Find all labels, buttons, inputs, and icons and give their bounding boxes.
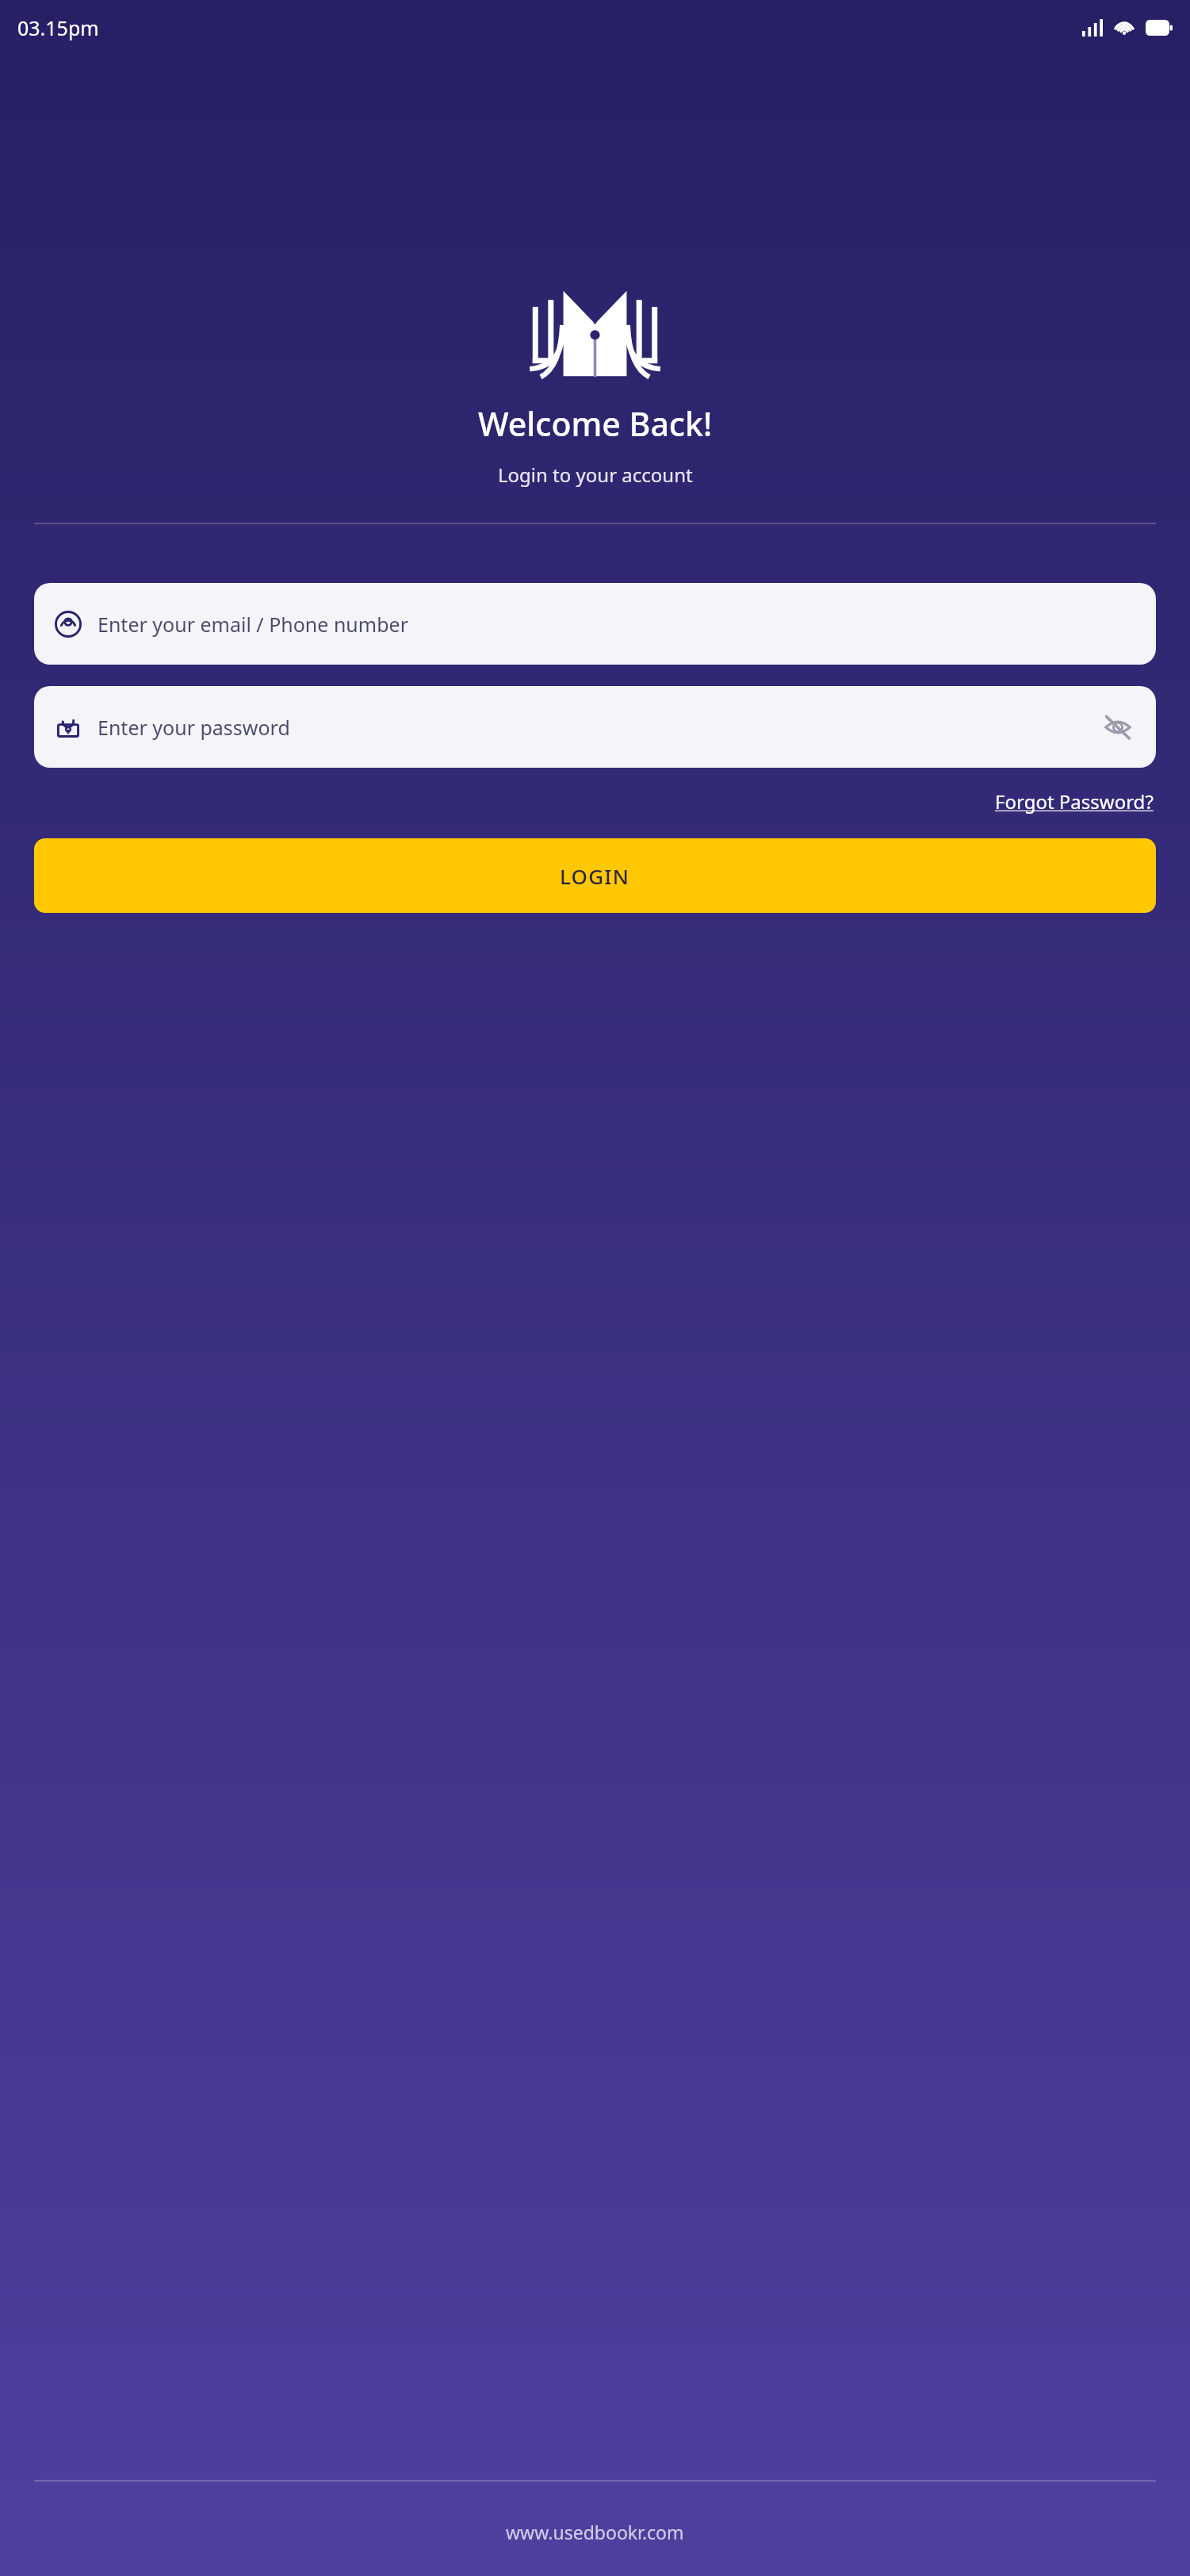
staticText: LOGIN (560, 862, 630, 890)
button[interactable]: Enter your password (34, 686, 1156, 768)
button[interactable]: Show password (1100, 710, 1135, 745)
button[interactable]: LOGIN (34, 838, 1156, 913)
button[interactable]: Enter your email / Phone number (34, 583, 1156, 665)
staticText: Forgot Password? (995, 788, 1154, 815)
staticText: Enter your password (98, 714, 290, 741)
staticText: 03.15pm (17, 14, 99, 41)
button[interactable]: Forgot Password? (993, 785, 1155, 818)
staticText: Enter your email / Phone number (98, 611, 408, 638)
staticText: Login to your account (498, 462, 693, 488)
staticText: www.usedbookr.com (506, 2520, 684, 2544)
staticText: Welcome Back! (478, 401, 713, 446)
